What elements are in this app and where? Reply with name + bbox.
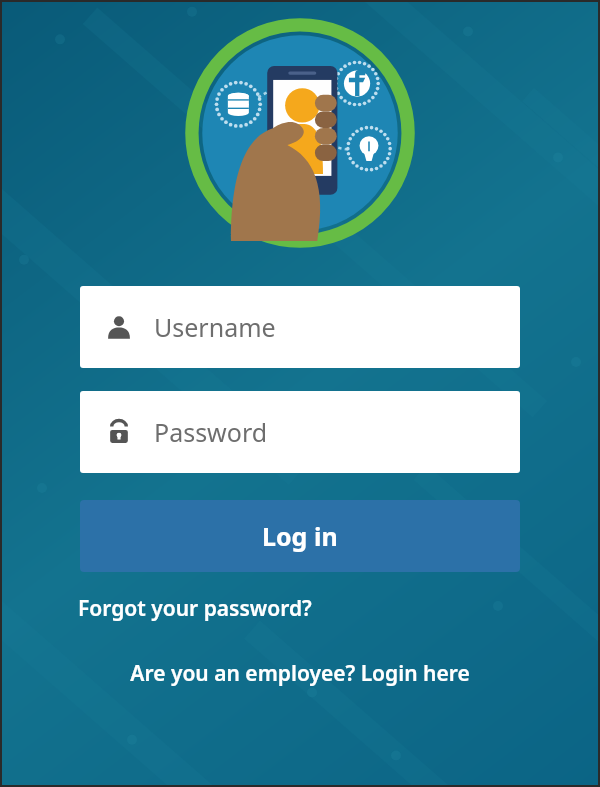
staticText: Log in [262,519,338,553]
staticText: Forgot your password? [78,594,312,623]
button[interactable]: Log in [80,500,520,572]
staticText: Are you an employee? Login here [130,659,470,688]
button[interactable]: Username [80,286,520,368]
button[interactable]: Password [80,391,520,473]
button[interactable]: Forgot your password? [78,590,312,627]
staticText: Username [154,310,276,344]
button[interactable]: Are you an employee? Login here [0,659,600,688]
staticText: Password [154,415,268,449]
